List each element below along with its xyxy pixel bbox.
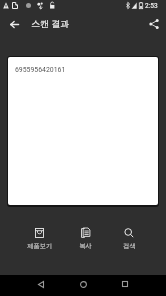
button[interactable]: 제품보기 (18, 225, 60, 253)
staticText: 복사 (79, 242, 92, 250)
button[interactable]: Home (62, 275, 104, 293)
button[interactable]: Back (4, 14, 24, 34)
staticText: 6955956420161 (15, 66, 66, 74)
button[interactable]: Recents (104, 275, 146, 293)
staticText: 스캔 결과 (31, 18, 70, 29)
staticText: 제품보기 (27, 242, 52, 250)
button[interactable]: 검색 (108, 225, 150, 253)
button[interactable]: Share (144, 14, 164, 34)
staticText: 검색 (123, 242, 136, 250)
button[interactable]: 복사 (64, 225, 106, 253)
staticText: 2:53 (145, 2, 158, 10)
button[interactable]: Back (20, 275, 62, 293)
